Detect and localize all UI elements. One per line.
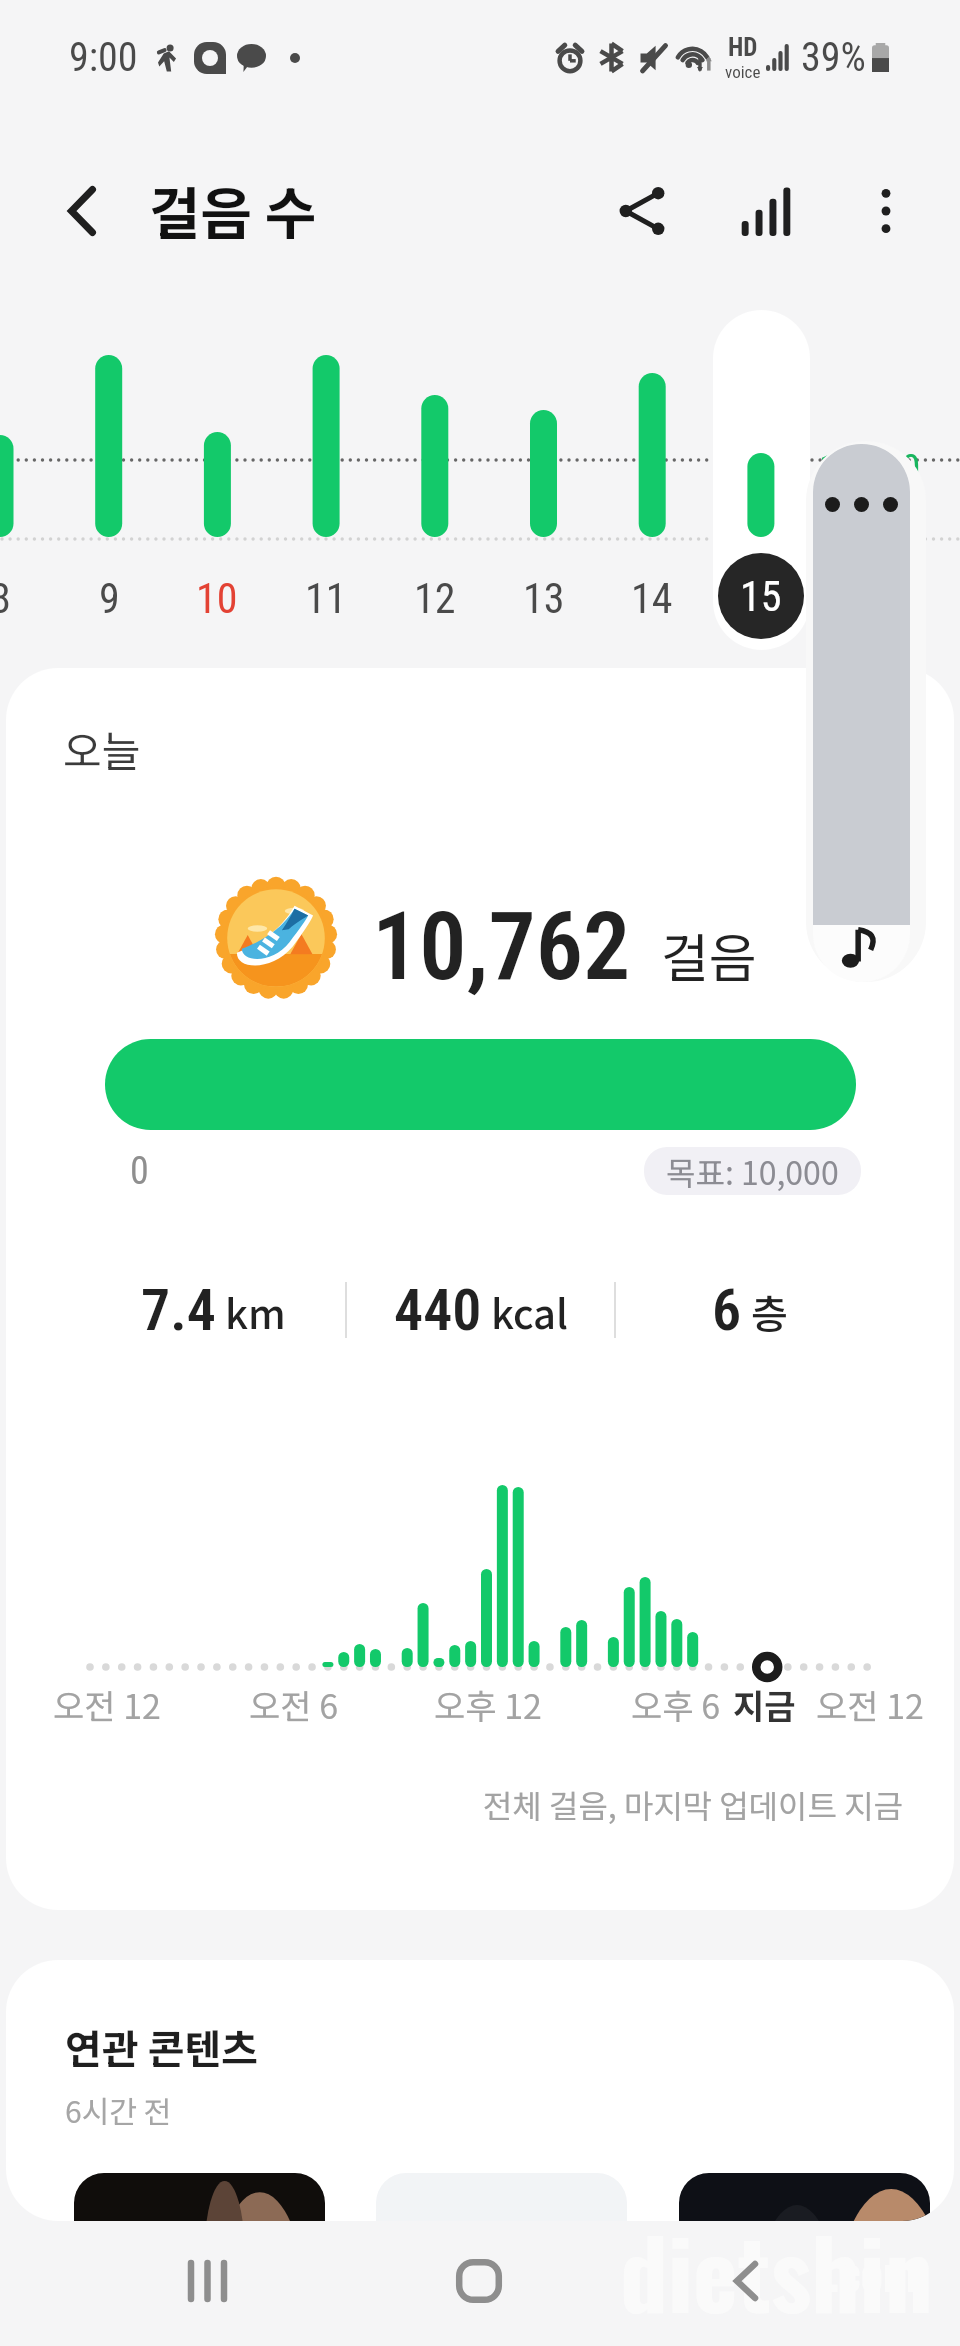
button[interactable]: Home xyxy=(424,2226,534,2336)
staticText: 층 xyxy=(751,1283,788,1341)
staticText: 10 xyxy=(196,574,238,623)
button[interactable]: More options xyxy=(834,159,938,263)
staticText: 39% xyxy=(801,34,866,81)
staticText: 10,762 xyxy=(372,892,631,1002)
staticText: 7.4 xyxy=(141,1276,216,1344)
staticText: voice xyxy=(725,62,761,82)
staticText: 오후 6 xyxy=(631,1680,721,1729)
staticText: 11 xyxy=(305,574,347,623)
staticText: km xyxy=(225,1283,286,1341)
staticText: 오늘 xyxy=(63,718,141,779)
staticText: 12 xyxy=(414,574,456,623)
staticText: dietshin xyxy=(620,2200,933,2325)
staticText: 9 xyxy=(99,574,120,623)
staticText: 오전 12 xyxy=(816,1680,924,1729)
button[interactable]: Day 15 xyxy=(713,310,810,650)
staticText: HD xyxy=(728,33,758,62)
staticText: 440 xyxy=(394,1276,482,1344)
staticText: 오후 12 xyxy=(434,1680,542,1729)
button[interactable]: Share xyxy=(590,159,694,263)
staticText: 13 xyxy=(523,574,565,623)
staticText: 15 xyxy=(740,572,782,621)
staticText: 오전 12 xyxy=(53,1680,161,1729)
staticText: 0 xyxy=(130,1149,149,1194)
staticText: 9:00 xyxy=(69,34,138,81)
staticText: 목표: 10,000 xyxy=(666,1148,839,1194)
button[interactable]: Floating shortcut xyxy=(813,444,910,982)
button[interactable]: Related article xyxy=(74,2173,325,2221)
staticText: 연관 콘텐츠 xyxy=(65,2018,259,2076)
staticText: 걸음 xyxy=(661,917,757,992)
staticText: kcal xyxy=(491,1283,568,1341)
staticText: 14 xyxy=(631,574,673,623)
staticText: 6 xyxy=(712,1276,742,1344)
staticText: 8 xyxy=(0,574,11,623)
staticText: 전체 걸음, 마지막 업데이트 지금 xyxy=(6,1781,903,1827)
button[interactable]: Back xyxy=(30,159,134,263)
button[interactable]: Back xyxy=(691,2226,801,2336)
staticText: 10,000 xyxy=(819,447,921,492)
staticText: 지금 xyxy=(733,1680,796,1729)
staticText: 걸음 수 xyxy=(149,169,317,250)
button[interactable]: Related article xyxy=(679,2173,930,2221)
button[interactable]: Trends xyxy=(714,159,818,263)
staticText: 6시간 전 xyxy=(65,2088,172,2131)
staticText: 오전 6 xyxy=(249,1680,339,1729)
button[interactable]: Recent apps xyxy=(152,2226,262,2336)
